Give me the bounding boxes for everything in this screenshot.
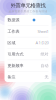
staticText: 选择需要引用的工作表与区域 [8, 10, 47, 13]
staticText: A1:D20 [35, 40, 48, 45]
staticText: 自动 [40, 63, 48, 68]
staticText: 外置单元格查找 [10, 2, 45, 9]
staticText: 更新频率 [7, 63, 23, 68]
staticText: 工作表 [7, 29, 19, 34]
staticText: 数据源 [7, 17, 19, 22]
staticText: 引用方式 [7, 52, 23, 57]
staticText: 无 [44, 74, 48, 79]
button[interactable]: 更新频率 [4, 60, 51, 71]
button[interactable]: 工作表 [4, 26, 51, 37]
staticText: 区域 [7, 40, 15, 45]
staticText: 绝对 [40, 52, 48, 57]
button[interactable]: 区域 [4, 37, 51, 48]
staticText: Sheet1 [37, 29, 48, 34]
button[interactable]: 数据源 [4, 14, 51, 25]
button[interactable]: 备注 [4, 71, 51, 82]
button[interactable]: 引用方式 [4, 49, 51, 60]
staticText: 备注 [7, 74, 15, 79]
